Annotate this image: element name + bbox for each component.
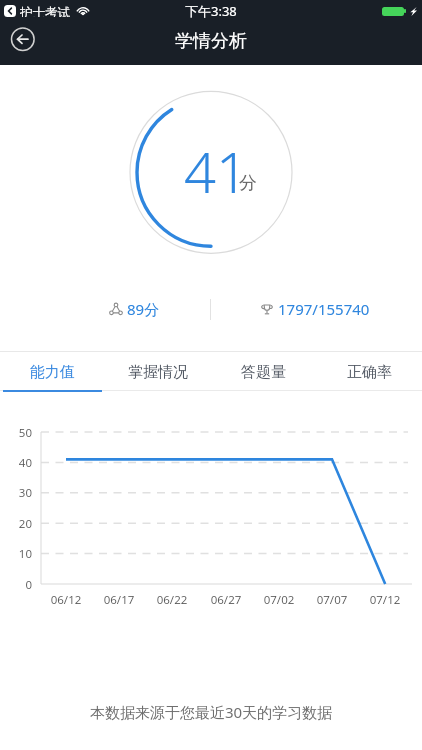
staticText: 89分 <box>127 299 160 319</box>
staticText: 41 <box>184 133 248 209</box>
staticText: 06/12 <box>41 592 91 608</box>
staticText: 30 <box>8 485 32 501</box>
button[interactable]: Back <box>6 23 40 57</box>
staticText: 07/12 <box>360 592 410 608</box>
button[interactable]: 89分 <box>108 296 162 321</box>
staticText: 分 <box>239 172 257 195</box>
button[interactable]: 1797/155740 <box>259 296 372 321</box>
button[interactable]: 答题量 <box>210 352 316 392</box>
staticText: 06/17 <box>94 592 144 608</box>
staticText: 掌握情况 <box>128 363 188 382</box>
staticText: 答题量 <box>241 363 286 382</box>
staticText: 学情分析 <box>175 30 247 53</box>
staticText: 下午3:38 <box>185 2 237 20</box>
staticText: 40 <box>8 455 32 471</box>
staticText: 06/22 <box>147 592 197 608</box>
staticText: 护士考试 <box>20 5 70 17</box>
staticText: 本数据来源于您最近30天的学习数据 <box>0 702 422 722</box>
staticText: 正确率 <box>347 363 392 382</box>
staticText: 07/02 <box>254 592 304 608</box>
button[interactable]: 能力值 <box>0 352 105 392</box>
staticText: 07/07 <box>307 592 357 608</box>
staticText: 06/27 <box>201 592 251 608</box>
button[interactable]: 正确率 <box>316 352 422 392</box>
staticText: 能力值 <box>30 363 75 382</box>
staticText: 1797/155740 <box>278 299 370 319</box>
staticText: 50 <box>8 425 32 441</box>
staticText: 10 <box>8 546 32 562</box>
staticText: 20 <box>8 516 32 532</box>
staticText: 0 <box>8 577 32 593</box>
button[interactable]: 掌握情况 <box>105 352 210 392</box>
